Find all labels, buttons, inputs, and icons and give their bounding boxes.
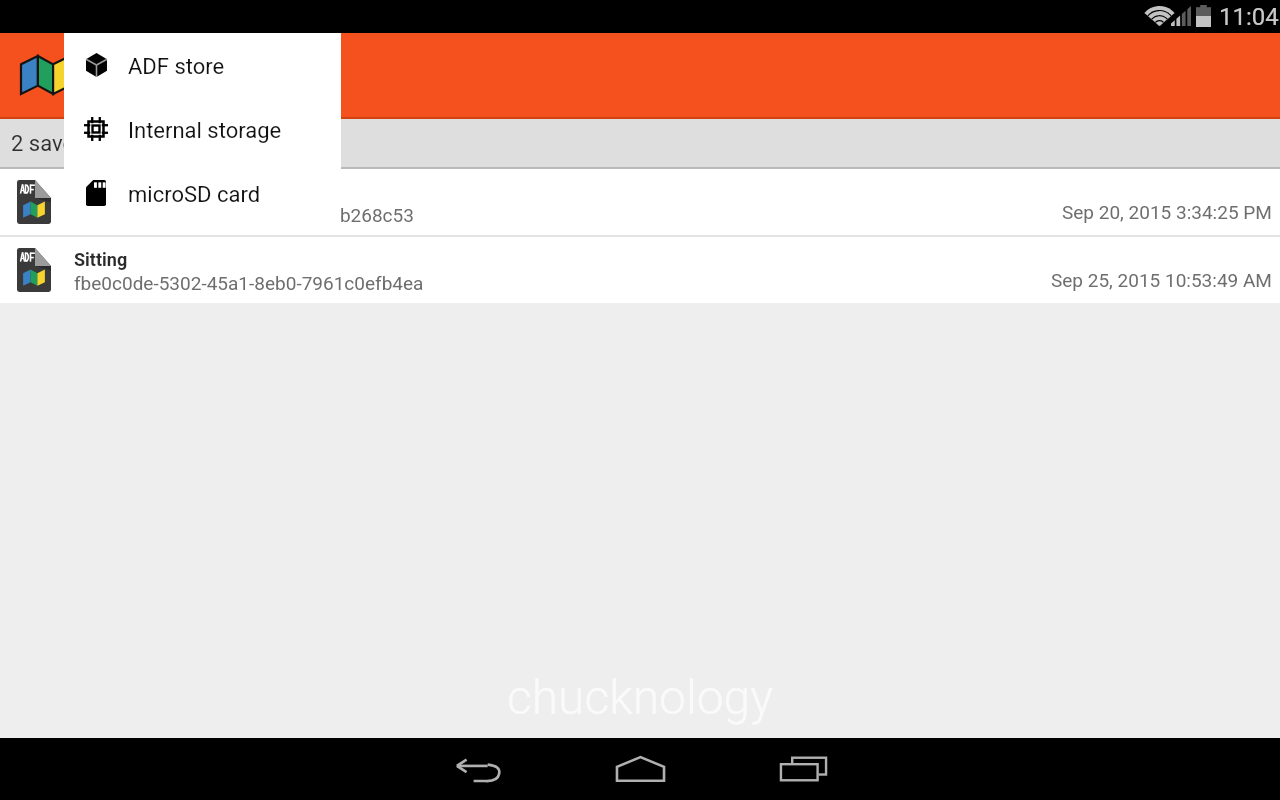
staticText: fbe0c0de-5302-45a1-8eb0-7961c0efb4ea xyxy=(74,272,424,294)
button[interactable]: microSD card xyxy=(64,161,341,225)
staticText: chucknology xyxy=(507,669,774,725)
staticText: Walking xyxy=(74,181,139,202)
button[interactable]: Sitting xyxy=(0,237,1280,303)
staticText: 2 saved ADF files xyxy=(11,131,179,157)
staticText: 11:04 xyxy=(1219,3,1279,31)
staticText: 5fbb4a7e-92e1-4ac9-b5df-e956b268c53 xyxy=(74,204,414,226)
button[interactable]: ADF store xyxy=(64,33,341,97)
button[interactable]: Internal storage xyxy=(64,97,341,161)
button[interactable]: Walking xyxy=(0,169,1280,235)
staticText: ADF store xyxy=(128,54,225,80)
staticText: Sitting xyxy=(74,249,128,270)
staticText: microSD card xyxy=(128,182,261,208)
button[interactable]: Home xyxy=(559,738,722,800)
staticText: Internal storage xyxy=(128,118,282,144)
staticText: Sep 25, 2015 10:53:49 AM xyxy=(1051,269,1272,291)
button[interactable]: App logo xyxy=(13,33,77,119)
staticText: Sep 20, 2015 3:34:25 PM xyxy=(1062,201,1272,223)
button[interactable]: Recent apps xyxy=(722,738,885,800)
button[interactable]: Back xyxy=(396,738,559,800)
